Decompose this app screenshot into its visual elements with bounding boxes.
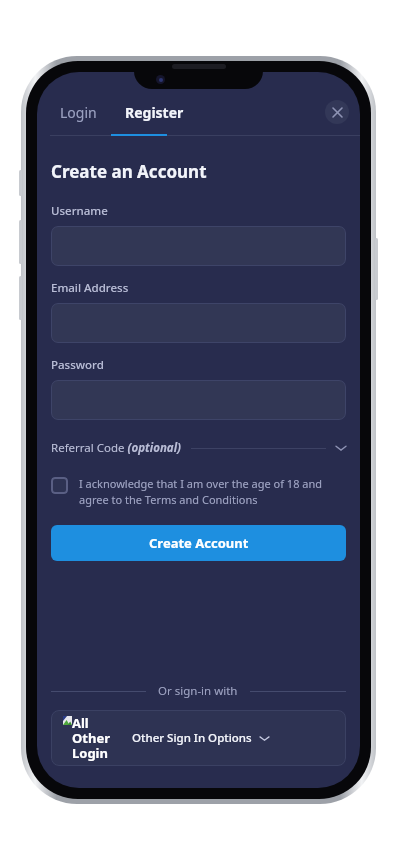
staticText: Create Account	[149, 534, 249, 552]
staticText: Referral Code (optional)	[51, 440, 181, 456]
button[interactable]	[51, 380, 346, 420]
button[interactable]: Close	[325, 100, 349, 124]
button[interactable]: Create Account	[51, 525, 346, 561]
button[interactable]: Register	[115, 95, 194, 130]
staticText: Create an Account	[51, 160, 207, 183]
staticText: Login	[60, 103, 97, 122]
staticText: I acknowledge that I am over the age of …	[79, 476, 346, 507]
staticText: Or sign-in with	[158, 683, 238, 699]
staticText: Password	[51, 357, 104, 373]
staticText: Other Sign In Options	[132, 730, 252, 746]
button[interactable]	[51, 303, 346, 343]
staticText: Username	[51, 203, 108, 219]
button[interactable]: All Other Login	[51, 710, 346, 766]
button[interactable]	[51, 226, 346, 266]
button[interactable]: I acknowledge that I am over the age of …	[37, 474, 360, 509]
button[interactable]: Referral Code (optional)	[37, 436, 360, 460]
staticText: Register	[125, 103, 184, 122]
staticText: All Other Login	[72, 714, 110, 762]
staticText: Email Address	[51, 280, 129, 296]
button[interactable]: Login	[50, 95, 107, 130]
